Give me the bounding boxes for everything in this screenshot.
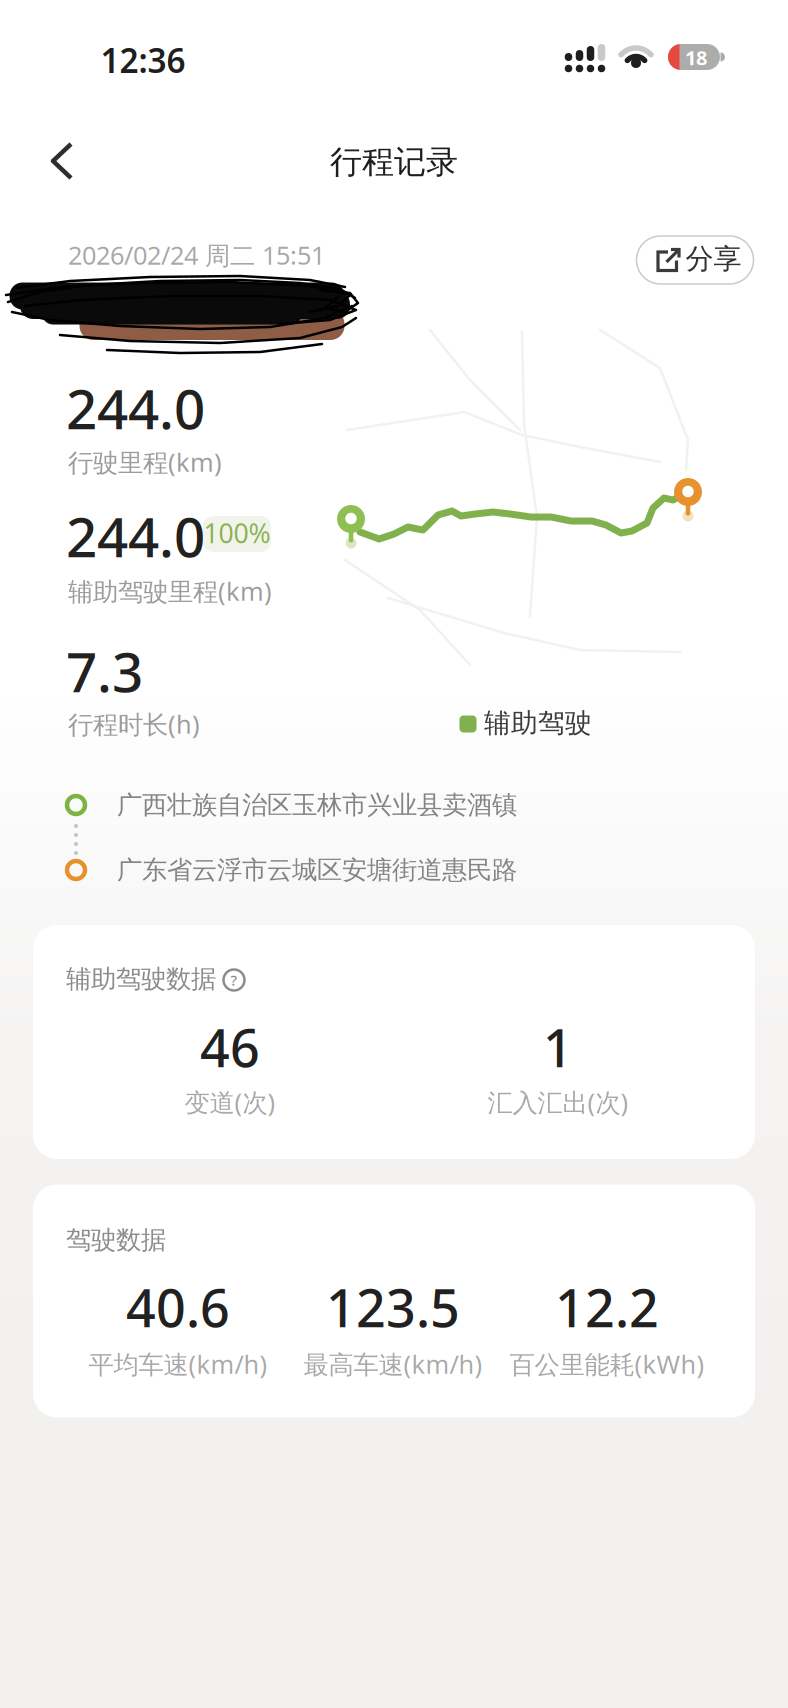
staticText: 驾驶数据: [66, 1224, 166, 1255]
staticText: 行程时长(h): [68, 707, 200, 741]
staticText: ?: [230, 970, 237, 990]
staticText: 12.2: [555, 1272, 659, 1342]
staticText: 最高车速(km/h): [303, 1347, 482, 1381]
staticText: 百公里能耗(kWh): [509, 1347, 704, 1381]
staticText: 汇入汇出(次): [487, 1085, 628, 1119]
staticText: 分享: [685, 242, 741, 276]
staticText: 100%: [203, 515, 270, 551]
staticText: 40.6: [126, 1272, 230, 1342]
staticText: 1: [543, 1012, 573, 1082]
staticText: 18: [685, 44, 707, 71]
staticText: 平均车速(km/h): [88, 1347, 267, 1381]
button[interactable]: ?: [219, 965, 249, 995]
button[interactable]: 分享: [636, 236, 753, 284]
staticText: 7.3: [66, 635, 143, 707]
staticText: 行驶里程(km): [68, 445, 222, 479]
staticText: 辅助驾驶数据: [66, 963, 216, 994]
staticText: 46: [200, 1012, 260, 1082]
staticText: 244.0: [66, 500, 205, 572]
staticText: 12:36: [100, 38, 185, 82]
staticText: 2026/02/24 周二 15:51: [68, 238, 325, 272]
staticText: 123.5: [326, 1272, 460, 1342]
staticText: 辅助驾驶里程(km): [68, 574, 272, 608]
button[interactable]: [52, 140, 96, 184]
staticText: 行程记录: [330, 142, 458, 182]
staticText: 辅助驾驶: [484, 707, 592, 739]
staticText: 广西壮族自治区玉林市兴业县卖酒镇: [117, 789, 517, 820]
staticText: 变道(次): [184, 1085, 275, 1119]
staticText: 广东省云浮市云城区安塘街道惠民路: [117, 854, 517, 885]
staticText: 244.0: [66, 372, 205, 444]
